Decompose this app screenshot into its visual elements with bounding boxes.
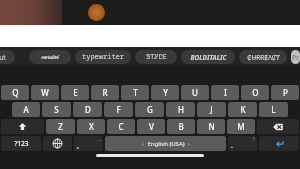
staticText: E [73, 87, 78, 98]
staticText: X [89, 121, 94, 132]
button[interactable]: Backspace [257, 119, 299, 134]
button[interactable]: T [121, 85, 149, 100]
button[interactable]: F [104, 102, 133, 117]
staticText: H [178, 104, 184, 115]
button[interactable]: ‹ [105, 136, 226, 151]
button[interactable]: Shift [1, 119, 44, 134]
staticText: ȻɄɌɌɆɅȻɎ [247, 53, 280, 62]
button[interactable]: ᏕᎢᎩᏝᎬ [135, 50, 177, 64]
staticText: R [102, 87, 108, 98]
button[interactable]: X [77, 119, 105, 134]
staticText: D [85, 104, 91, 115]
button[interactable]: C [107, 119, 135, 134]
staticText: › [188, 140, 190, 148]
button[interactable]: Y [151, 85, 179, 100]
staticText: U [192, 87, 198, 98]
button[interactable]: 𝒸𝓊𝓇𝓈𝒾𝓋𝒾 [29, 50, 71, 64]
staticText: … [97, 136, 101, 143]
staticText: ‹ [142, 140, 144, 148]
button[interactable]: BOLDITALIC [181, 50, 235, 64]
button[interactable]: Z [46, 119, 75, 134]
staticText: Premium [291, 53, 300, 62]
button[interactable]: L [259, 102, 288, 117]
staticText: L [271, 104, 276, 115]
button[interactable]: A [12, 102, 40, 117]
staticText: N [208, 121, 215, 132]
button[interactable]: ȻɄɌɌɆɅȻɎ [239, 50, 287, 64]
staticText: ᏕᎢᎩᏝᎬ [146, 54, 167, 61]
staticText: P [283, 87, 288, 98]
button[interactable]: E [61, 85, 89, 100]
button[interactable]: Q [1, 85, 29, 100]
button[interactable]: W [31, 85, 59, 100]
staticText: ut [0, 53, 6, 62]
staticText: A [23, 104, 29, 115]
button[interactable]: P [271, 85, 299, 100]
button[interactable]: ?123 [1, 136, 41, 151]
staticText: ?123 [14, 139, 29, 148]
staticText: Y [163, 87, 168, 98]
button[interactable]: M [227, 119, 255, 134]
staticText: Z [58, 121, 63, 132]
staticText: F [116, 104, 121, 115]
staticText: typewriter [82, 52, 124, 62]
button[interactable]: D [73, 102, 102, 117]
staticText: 𝒸𝓊𝓇𝓈𝒾𝓋𝒾 [41, 54, 59, 60]
button[interactable]: Enter [259, 136, 299, 151]
staticText: I [224, 87, 227, 98]
button[interactable]: typewriter [75, 50, 131, 64]
button[interactable]: N [197, 119, 225, 134]
staticText: . [231, 141, 233, 151]
button[interactable]: G [135, 102, 164, 117]
staticText: K [240, 104, 246, 115]
button[interactable]: S [42, 102, 71, 117]
staticText: M [237, 121, 245, 132]
staticText: English (USA) [147, 140, 185, 148]
button[interactable]: ut [0, 50, 15, 64]
staticText: V [149, 121, 154, 132]
staticText: C [118, 121, 124, 132]
button[interactable]: … [74, 136, 103, 151]
button[interactable]: U [181, 85, 209, 100]
button[interactable]: ? [228, 136, 257, 151]
button[interactable]: O [241, 85, 269, 100]
staticText: G [147, 104, 153, 115]
staticText: S [54, 104, 59, 115]
button[interactable]: H [166, 102, 195, 117]
button[interactable]: V [137, 119, 165, 134]
button[interactable]: J [197, 102, 226, 117]
staticText: ? [252, 136, 255, 143]
staticText: W [41, 87, 49, 98]
staticText: BOLDITALIC [190, 53, 227, 62]
button[interactable]: Sticker [88, 4, 105, 21]
staticText: B [178, 121, 184, 132]
button[interactable]: Change keyboard language [43, 136, 72, 151]
staticText: J [210, 104, 213, 115]
button[interactable]: R [91, 85, 119, 100]
button[interactable]: Premium [291, 50, 300, 64]
staticText: T [133, 87, 138, 98]
staticText: O [252, 87, 259, 98]
staticText: , [77, 141, 79, 151]
staticText: Q [12, 87, 19, 98]
button[interactable]: B [167, 119, 195, 134]
button[interactable]: K [228, 102, 257, 117]
button[interactable]: I [211, 85, 239, 100]
